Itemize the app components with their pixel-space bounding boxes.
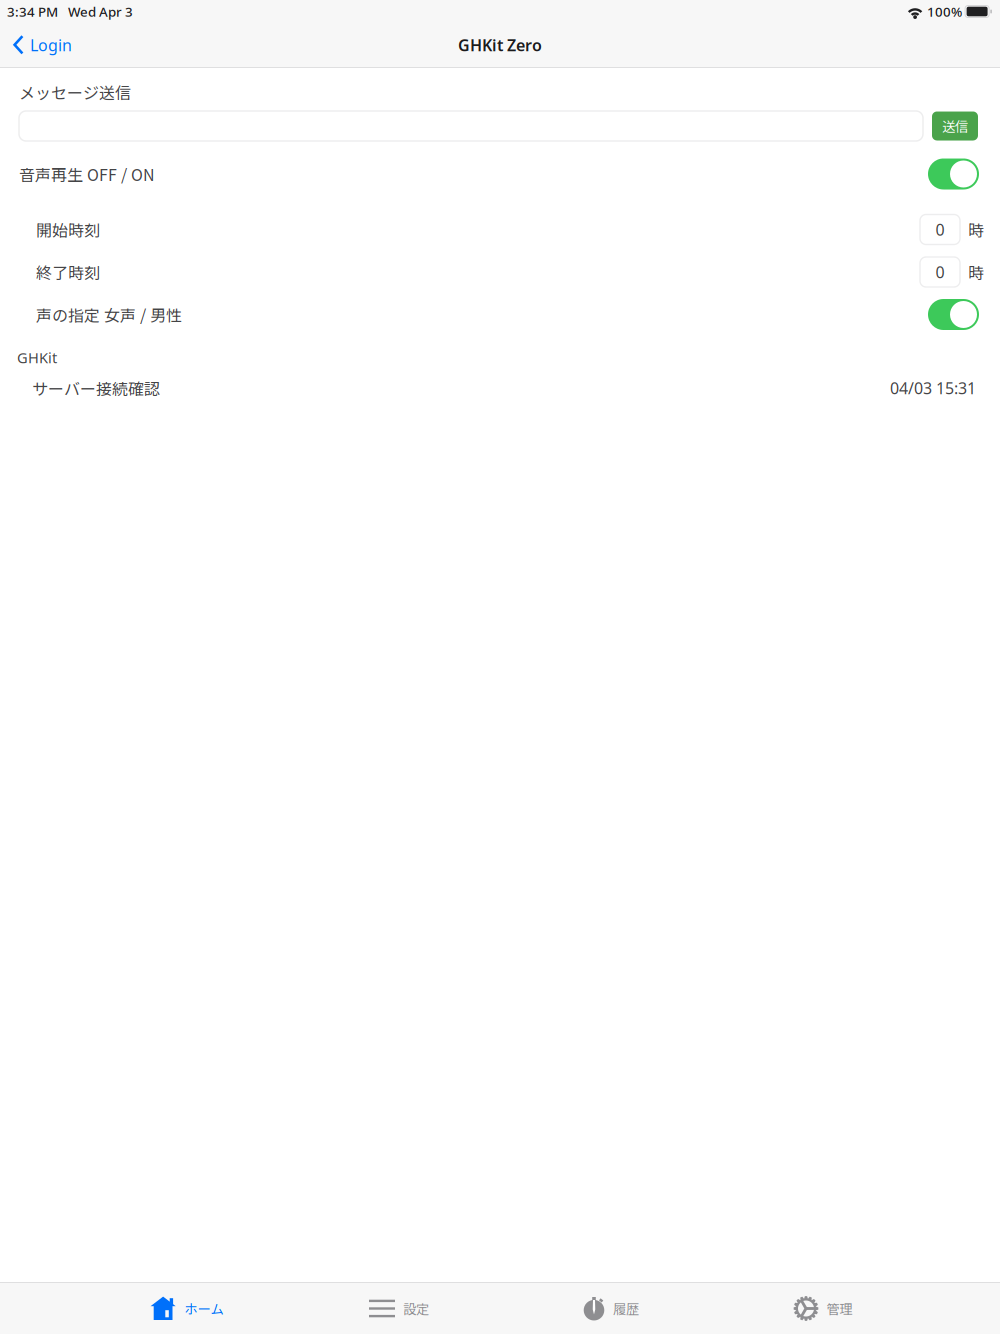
staticText: サーバー接続確認 bbox=[32, 376, 160, 400]
staticText: 3:34 PM bbox=[7, 3, 58, 20]
button[interactable]: Login bbox=[0, 27, 72, 63]
staticText: Login bbox=[30, 34, 72, 56]
button[interactable]: サーバー接続確認 bbox=[0, 378, 1000, 398]
button[interactable]: 音声再生 OFF / ON bbox=[928, 158, 979, 189]
staticText: 04/03 15:31 bbox=[890, 377, 976, 399]
staticText: 時 bbox=[968, 260, 984, 284]
staticText: 音声再生 OFF / ON bbox=[19, 162, 155, 186]
staticText: 終了時刻 bbox=[36, 260, 100, 284]
button[interactable]: 終了時刻 bbox=[920, 257, 960, 287]
staticText: 設定 bbox=[403, 1299, 429, 1318]
staticText: 0 bbox=[935, 219, 944, 240]
staticText: 開始時刻 bbox=[36, 218, 100, 241]
staticText: GHKit bbox=[17, 348, 57, 367]
staticText: GHKit Zero bbox=[458, 34, 542, 56]
button[interactable]: Message input bbox=[19, 111, 923, 141]
button[interactable]: 声の指定 女声 / 男性 bbox=[928, 299, 979, 330]
staticText: 0 bbox=[935, 261, 944, 283]
button[interactable]: 履歴 bbox=[505, 1283, 717, 1334]
button[interactable]: ホーム bbox=[81, 1283, 293, 1334]
staticText: 時 bbox=[968, 218, 984, 241]
button[interactable]: 送信 bbox=[932, 111, 978, 140]
staticText: Wed Apr 3 bbox=[68, 3, 133, 20]
staticText: 声の指定 女声 / 男性 bbox=[36, 303, 182, 326]
staticText: メッセージ送信 bbox=[19, 80, 131, 104]
staticText: ホーム bbox=[184, 1299, 223, 1318]
button[interactable]: 管理 bbox=[717, 1283, 929, 1334]
staticText: 履歴 bbox=[613, 1299, 639, 1318]
button[interactable]: 開始時刻 bbox=[920, 214, 960, 244]
staticText: 管理 bbox=[826, 1299, 852, 1318]
button[interactable]: 設定 bbox=[293, 1283, 505, 1334]
staticText: 送信 bbox=[942, 116, 968, 136]
staticText: 100% bbox=[927, 3, 962, 20]
